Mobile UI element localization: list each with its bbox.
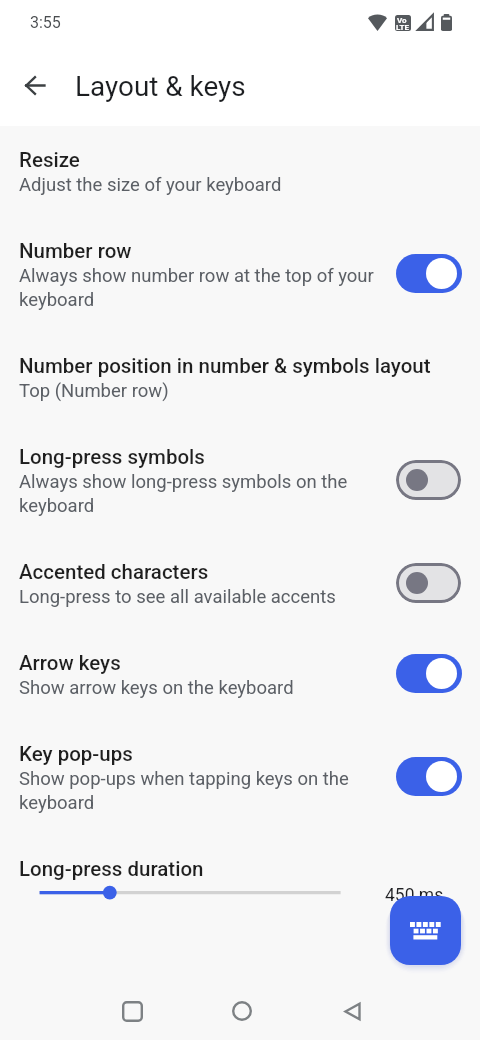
- staticText: Resize: [19, 147, 80, 172]
- staticText: Adjust the size of your keyboard: [19, 172, 282, 196]
- button[interactable]: Number position in number & symbols layo…: [0, 332, 480, 423]
- button[interactable]: Off: [396, 562, 462, 602]
- button[interactable]: Accented characters: [0, 538, 480, 629]
- button[interactable]: Arrow keys: [0, 629, 480, 720]
- staticText: Long-press to see all available accents: [19, 584, 336, 608]
- staticText: Vo: [397, 16, 407, 25]
- button[interactable]: Number row: [0, 217, 480, 332]
- button[interactable]: Off: [396, 459, 462, 499]
- staticText: Show arrow keys on the keyboard: [19, 675, 294, 699]
- staticText: Layout & keys: [75, 70, 246, 103]
- staticText: 3:55: [30, 13, 61, 32]
- staticText: Show pop-ups when tapping keys on the ke…: [19, 766, 349, 814]
- button[interactable]: Back: [12, 63, 57, 108]
- button[interactable]: Home: [222, 991, 262, 1031]
- staticText: Accented characters: [19, 559, 209, 584]
- button[interactable]: Long-press duration slider: [32, 881, 348, 911]
- button[interactable]: Back: [332, 991, 372, 1031]
- staticText: Always show number row at the top of you…: [19, 263, 381, 311]
- staticText: Key pop-ups: [19, 741, 133, 766]
- button[interactable]: Long-press symbols: [0, 423, 480, 538]
- button[interactable]: Show keyboard: [390, 896, 461, 965]
- staticText: Long-press duration: [19, 856, 204, 881]
- staticText: Long-press symbols: [19, 444, 205, 469]
- staticText: Arrow keys: [19, 650, 121, 675]
- button[interactable]: On: [396, 653, 462, 693]
- staticText: Always show long-press symbols on the ke…: [19, 469, 349, 517]
- staticText: Top (Number row): [19, 378, 169, 402]
- staticText: Number position in number & symbols layo…: [19, 353, 431, 378]
- staticText: Number row: [19, 238, 132, 263]
- button[interactable]: Resize: [0, 126, 480, 217]
- button[interactable]: On: [396, 253, 462, 293]
- staticText: 450 ms: [385, 885, 444, 906]
- button[interactable]: Recent apps: [112, 991, 152, 1031]
- button[interactable]: Key pop-ups: [0, 720, 480, 835]
- staticText: LTE: [396, 23, 409, 31]
- button[interactable]: On: [396, 756, 462, 796]
